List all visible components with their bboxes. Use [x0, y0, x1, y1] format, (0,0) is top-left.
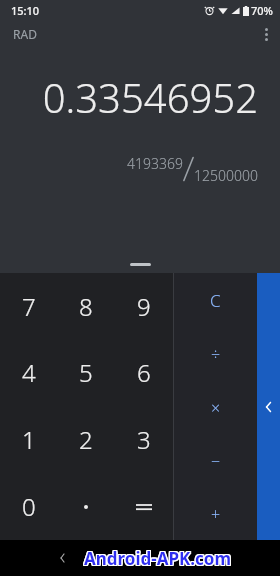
staticText: 12500000: [194, 166, 258, 185]
staticText: −: [211, 450, 221, 472]
button[interactable]: Expand pad: [130, 263, 151, 266]
staticText: Android-APK.com: [83, 548, 231, 571]
staticText: 0.33546952: [42, 70, 258, 124]
button[interactable]: 3: [115, 406, 173, 473]
button[interactable]: 2: [57, 406, 115, 473]
staticText: ÷: [211, 343, 221, 365]
staticText: 1: [22, 423, 36, 456]
staticText: 70%: [251, 3, 273, 18]
button[interactable]: RAD: [0, 24, 43, 44]
button[interactable]: Multiply: [174, 381, 257, 434]
staticText: 8: [79, 290, 93, 323]
button[interactable]: 5: [57, 339, 115, 406]
button[interactable]: 6: [115, 339, 173, 406]
button[interactable]: [115, 473, 173, 540]
staticText: 2: [79, 423, 93, 456]
staticText: Android-APK.com: [83, 546, 231, 569]
staticText: +: [211, 503, 221, 525]
staticText: Android-APK.com: [85, 546, 233, 569]
staticText: 4: [22, 356, 36, 389]
button[interactable]: Clear: [174, 273, 257, 327]
button[interactable]: 7: [0, 273, 57, 339]
button[interactable]: Open panel: [257, 273, 280, 540]
button[interactable]: [57, 473, 115, 540]
staticText: Android-APK.com: [84, 548, 232, 571]
staticText: 4193369: [127, 154, 183, 173]
button[interactable]: Add: [174, 487, 257, 540]
button[interactable]: Back: [50, 546, 74, 570]
button[interactable]: 0: [0, 473, 57, 540]
button[interactable]: Divide: [174, 327, 257, 381]
button[interactable]: 4: [0, 339, 57, 406]
staticText: Android-APK.com: [85, 547, 233, 570]
staticText: 9: [137, 290, 151, 323]
button[interactable]: Subtract: [174, 434, 257, 487]
staticText: 5: [79, 356, 93, 389]
staticText: 7: [22, 290, 36, 323]
staticText: Android-APK.com: [84, 547, 232, 570]
staticText: 0: [22, 490, 36, 523]
staticText: ×: [211, 397, 221, 419]
staticText: 3: [137, 423, 151, 456]
staticText: 6: [137, 356, 151, 389]
staticText: 15:10: [11, 3, 40, 18]
button[interactable]: 1: [0, 406, 57, 473]
staticText: Android-APK.com: [83, 547, 231, 570]
staticText: Android-APK.com: [85, 548, 233, 571]
staticText: C: [210, 289, 221, 312]
button[interactable]: More options: [252, 20, 280, 48]
button[interactable]: 9: [115, 273, 173, 339]
staticText: Android-APK.com: [84, 546, 232, 569]
button[interactable]: 8: [57, 273, 115, 339]
